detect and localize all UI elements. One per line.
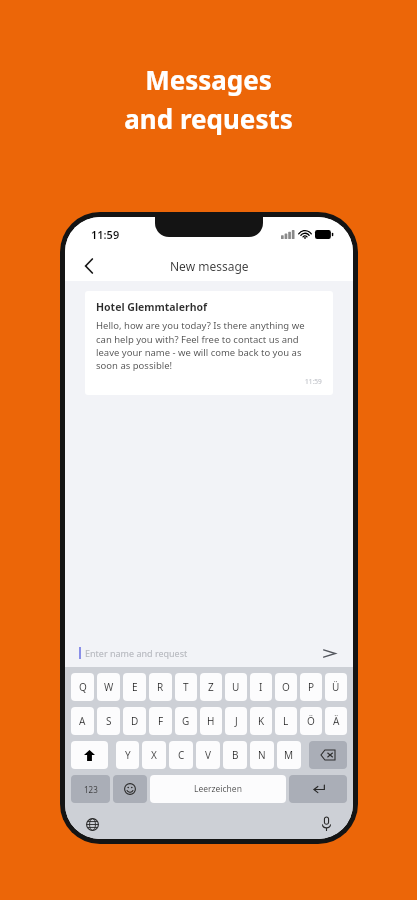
staticText: K [258, 714, 265, 728]
staticText: O [282, 680, 290, 694]
staticText: New message [170, 258, 249, 274]
staticText: 11:59 [91, 227, 120, 242]
staticText: Ü [332, 680, 340, 694]
button[interactable]: G [175, 707, 197, 735]
button[interactable]: K [250, 707, 272, 735]
staticText: V [205, 748, 211, 762]
staticText: Leerzeichen [194, 783, 242, 795]
button[interactable]: V [196, 741, 220, 769]
staticText: J [235, 714, 238, 728]
button[interactable]: J [225, 707, 247, 735]
button[interactable]: Emoji [113, 775, 147, 803]
button[interactable]: Shift [71, 741, 108, 769]
button[interactable]: N [250, 741, 274, 769]
staticText: Q [79, 680, 87, 694]
staticText: G [182, 714, 190, 728]
staticText: N [258, 748, 266, 762]
staticText: S [106, 714, 112, 728]
button[interactable]: Leerzeichen [150, 775, 286, 803]
staticText: Enter name and request [85, 647, 188, 659]
button[interactable]: B [223, 741, 247, 769]
button[interactable]: Hotel Glemmtalerhof [85, 291, 333, 395]
button[interactable]: X [142, 741, 166, 769]
staticText: D [131, 714, 139, 728]
button[interactable]: R [149, 673, 172, 701]
button[interactable]: Send [319, 643, 339, 663]
staticText: A [79, 714, 86, 728]
button[interactable]: A [71, 707, 94, 735]
button[interactable]: H [200, 707, 222, 735]
button[interactable]: C [169, 741, 193, 769]
staticText: W [104, 680, 114, 694]
staticText: Messages [145, 62, 272, 97]
button[interactable]: Dictate [315, 813, 337, 835]
staticText: R [157, 680, 164, 694]
staticText: H [207, 714, 215, 728]
button[interactable]: W [97, 673, 120, 701]
button[interactable]: Z [200, 673, 222, 701]
button[interactable]: Return [289, 775, 347, 803]
staticText: Z [208, 680, 214, 694]
staticText: I [259, 680, 263, 694]
staticText: M [284, 748, 294, 762]
staticText: Hello, how are you today? Is there anyth… [96, 319, 322, 371]
button[interactable]: U [225, 673, 247, 701]
staticText: B [232, 748, 239, 762]
staticText: 123 [84, 784, 98, 795]
button[interactable]: D [123, 707, 146, 735]
staticText: P [308, 680, 315, 694]
button[interactable]: Ü [325, 673, 347, 701]
button[interactable]: Backspace [309, 741, 347, 769]
button[interactable]: T [175, 673, 197, 701]
staticText: E [132, 680, 138, 694]
staticText: 11:59 [305, 377, 322, 386]
staticText: and requests [124, 101, 293, 136]
staticText: F [158, 714, 164, 728]
button[interactable]: Change keyboard language [81, 813, 103, 835]
button[interactable]: O [275, 673, 297, 701]
button[interactable]: 123 [71, 775, 110, 803]
staticText: T [183, 680, 189, 694]
staticText: X [151, 748, 157, 762]
staticText: U [232, 680, 240, 694]
button[interactable]: Ä [325, 707, 347, 735]
button[interactable]: S [97, 707, 120, 735]
staticText: L [283, 714, 289, 728]
staticText: C [178, 748, 185, 762]
staticText: Y [125, 748, 131, 762]
button[interactable]: M [277, 741, 301, 769]
staticText: Ä [333, 714, 340, 728]
button[interactable]: E [123, 673, 146, 701]
button[interactable]: F [149, 707, 172, 735]
button[interactable]: Enter name and request [65, 639, 353, 667]
button[interactable]: Ö [300, 707, 322, 735]
button[interactable]: I [250, 673, 272, 701]
button[interactable]: Back [73, 251, 105, 281]
button[interactable]: L [275, 707, 297, 735]
button[interactable]: P [300, 673, 322, 701]
staticText: Hotel Glemmtalerhof [96, 300, 208, 314]
button[interactable]: Y [116, 741, 139, 769]
button[interactable]: Q [71, 673, 94, 701]
staticText: Ö [307, 714, 315, 728]
